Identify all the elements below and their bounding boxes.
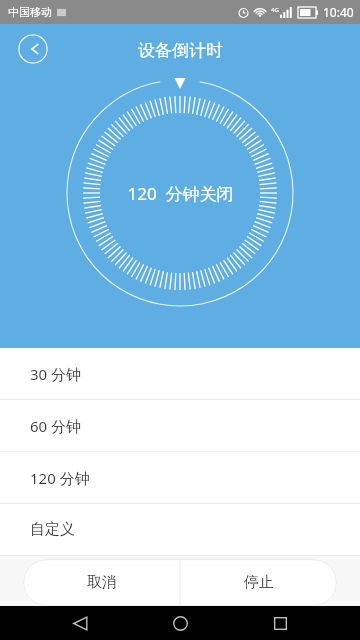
- button[interactable]: Recents: [260, 606, 300, 640]
- staticText: 120 分钟关闭: [127, 182, 234, 205]
- staticText: 设备倒计时: [138, 40, 223, 61]
- staticText: 自定义: [30, 520, 75, 539]
- button[interactable]: Home: [160, 606, 200, 640]
- button[interactable]: Back: [18, 34, 48, 64]
- staticText: 中国移动: [8, 5, 52, 19]
- button[interactable]: 自定义: [0, 504, 360, 555]
- staticText: 4G: [271, 6, 279, 14]
- button[interactable]: 60 分钟: [0, 400, 360, 451]
- button[interactable]: 停止: [180, 559, 337, 606]
- staticText: 取消: [87, 573, 117, 592]
- staticText: 停止: [244, 573, 274, 592]
- button[interactable]: 30 分钟: [0, 348, 360, 399]
- staticText: 10:40: [323, 4, 354, 20]
- button[interactable]: 取消: [23, 559, 180, 606]
- staticText: 120 分钟: [30, 468, 90, 488]
- button[interactable]: 120 分钟: [0, 452, 360, 503]
- staticText: 30 分钟: [30, 364, 82, 384]
- button[interactable]: Back: [60, 606, 100, 640]
- staticText: 60 分钟: [30, 416, 82, 436]
